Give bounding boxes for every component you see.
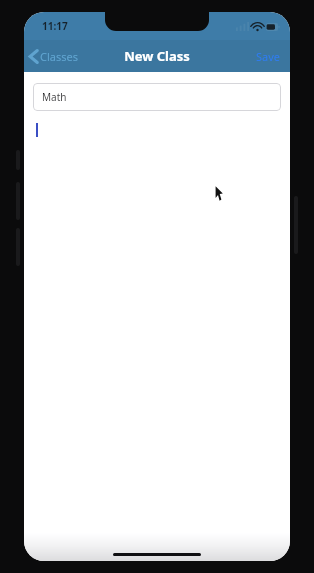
staticText: New Class: [124, 47, 190, 65]
staticText: Classes: [40, 49, 78, 64]
button[interactable]: Save: [247, 44, 290, 69]
staticText: Save: [256, 49, 281, 64]
staticText: Math: [42, 90, 67, 104]
staticText: 11:17: [42, 19, 68, 33]
button[interactable]: Classes: [24, 45, 86, 68]
button[interactable]: Math: [33, 83, 281, 111]
